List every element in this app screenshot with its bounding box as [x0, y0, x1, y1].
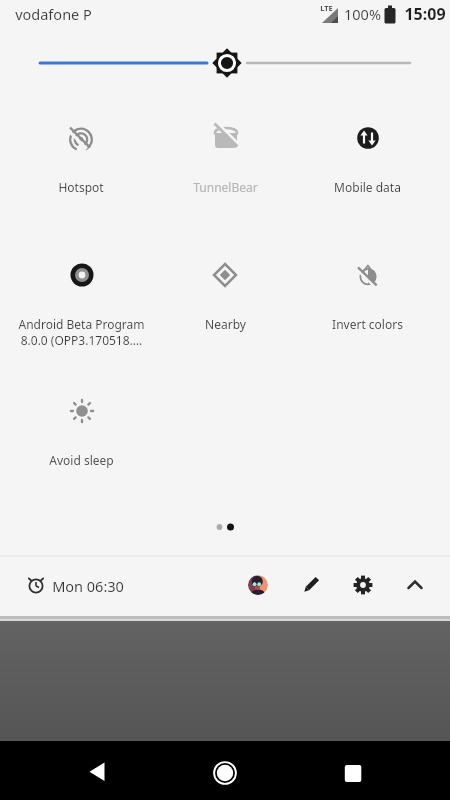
button[interactable]: Android Beta Program 8.0.0 (OPP3.170518.…	[10, 253, 152, 353]
button[interactable]	[75, 750, 120, 795]
button[interactable]: TunnelBear	[154, 116, 296, 200]
staticText: Mon 06:30	[52, 576, 124, 596]
button[interactable]: Mon 06:30	[20, 566, 150, 606]
staticText: Android Beta Program 8.0.0 (OPP3.170518.…	[18, 316, 145, 348]
staticText: Hotspot	[58, 179, 104, 195]
staticText: Invert colors	[332, 316, 403, 332]
staticText: Mobile data	[334, 179, 401, 195]
staticText: Nearby	[205, 316, 246, 332]
staticText: 100%	[344, 4, 381, 24]
staticText: TunnelBear	[193, 179, 258, 195]
button[interactable]	[297, 571, 325, 599]
button[interactable]: Mobile data	[296, 116, 438, 200]
button[interactable]	[244, 571, 272, 599]
staticText: LTE	[320, 3, 333, 11]
button[interactable]: Avoid sleep	[10, 389, 152, 473]
staticText: 15:09	[404, 3, 446, 25]
staticText: Avoid sleep	[49, 452, 114, 468]
button[interactable]	[202, 750, 247, 795]
staticText: vodafone P	[15, 4, 92, 24]
button[interactable]	[330, 750, 375, 795]
button[interactable]	[401, 571, 429, 599]
button[interactable]: Nearby	[154, 253, 296, 337]
button[interactable]	[349, 571, 377, 599]
button[interactable]: Invert colors	[296, 253, 438, 337]
button[interactable]: Hotspot	[10, 116, 152, 200]
